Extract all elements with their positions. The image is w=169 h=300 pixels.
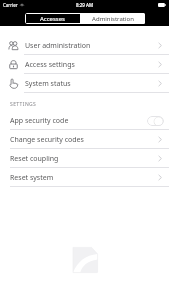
button[interactable]: Change security codes: [0, 130, 169, 149]
staticText: 8:29 AM: [76, 2, 94, 8]
other: Access settings: [8, 59, 19, 70]
staticText: Administration: [92, 15, 134, 23]
staticText: System status: [25, 79, 158, 89]
staticText: Change security codes: [10, 135, 158, 145]
button[interactable]: Reset system: [0, 168, 169, 187]
other: User administration: [8, 40, 19, 51]
staticText: Accesses: [40, 15, 65, 23]
staticText: SETTINGS: [10, 101, 37, 108]
staticText: Reset system: [10, 173, 158, 183]
button[interactable]: System status: [0, 74, 169, 93]
staticText: App security code: [10, 116, 147, 126]
staticText: Access settings: [25, 60, 158, 70]
button[interactable]: Access settings: [0, 55, 169, 74]
staticText: User administration: [25, 41, 158, 51]
button[interactable]: Reset coupling: [0, 149, 169, 168]
staticText: Reset coupling: [10, 154, 158, 164]
button[interactable]: User administration: [0, 36, 169, 55]
button[interactable]: Accesses: [25, 13, 80, 24]
other: System status: [8, 78, 19, 89]
staticText: Carrier: [3, 2, 18, 8]
button[interactable]: Administration: [81, 13, 145, 24]
button[interactable]: App security code: [0, 111, 169, 130]
button[interactable]: App security code toggle: [147, 116, 164, 126]
